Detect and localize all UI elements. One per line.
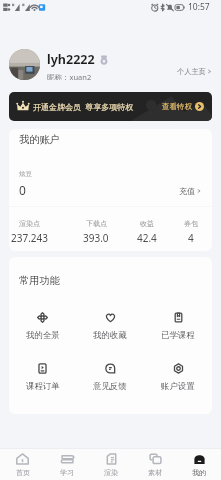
staticText: 我的全景 <box>26 330 60 341</box>
staticText: 券包 <box>184 219 198 228</box>
staticText: 渲染点 <box>19 219 40 228</box>
staticText: 个人主页 <box>177 67 206 76</box>
staticText: 我的收藏 <box>93 330 127 341</box>
staticText: 下载点 <box>86 219 107 228</box>
staticText: 42.4 <box>137 231 157 243</box>
button[interactable]: 券包 <box>171 219 211 243</box>
button[interactable]: 炫豆 <box>9 170 212 198</box>
staticText: 我的账户 <box>19 133 60 146</box>
staticText: 充值 <box>179 186 195 196</box>
staticText: 我的 <box>192 468 206 477</box>
staticText: 渲染 <box>104 468 118 477</box>
staticText: 已学课程 <box>161 330 195 341</box>
button[interactable]: 渲染 <box>89 449 133 480</box>
button[interactable]: 我的收藏 <box>76 312 144 341</box>
staticText: 昵称：xuan2 <box>47 72 92 80</box>
button[interactable]: 我的 <box>177 449 221 480</box>
staticText: 10:57 <box>188 1 210 13</box>
staticText: 4 <box>188 231 194 243</box>
staticText: 炫豆 <box>19 170 32 178</box>
staticText: 课程订单 <box>26 381 60 392</box>
button[interactable]: 渲染点 <box>9 219 49 243</box>
staticText: 常用功能 <box>19 274 60 287</box>
staticText: 237.243 <box>11 231 48 243</box>
button[interactable]: 意见反馈 <box>76 363 144 392</box>
staticText: 0 <box>19 182 26 198</box>
staticText: 开通金牌会员 尊享多项特权 <box>33 101 134 112</box>
button[interactable]: 课程订单 <box>9 363 76 392</box>
button[interactable]: 收益 <box>127 219 167 243</box>
button[interactable]: 开通金牌会员 尊享多项特权 <box>9 92 212 121</box>
staticText: 账户设置 <box>161 381 195 392</box>
button[interactable]: 下载点 <box>76 219 116 243</box>
button[interactable]: 我的全景 <box>9 312 76 341</box>
staticText: lyh2222 <box>47 51 95 68</box>
button[interactable]: 账户设置 <box>144 363 212 392</box>
staticText: 收益 <box>140 219 154 228</box>
staticText: 查看特权 <box>162 102 192 111</box>
staticText: 首页 <box>16 468 30 477</box>
button[interactable]: 个人主页 <box>177 67 212 80</box>
button[interactable]: 学习 <box>45 449 89 480</box>
staticText: 学习 <box>60 468 74 477</box>
button[interactable]: 已学课程 <box>144 312 212 341</box>
button[interactable]: 首页 <box>0 449 45 480</box>
button[interactable]: 素材 <box>133 449 177 480</box>
staticText: 素材 <box>148 468 162 477</box>
staticText: 393.0 <box>83 231 109 243</box>
button[interactable]: lyh2222 <box>0 49 221 80</box>
staticText: 意见反馈 <box>93 381 127 392</box>
